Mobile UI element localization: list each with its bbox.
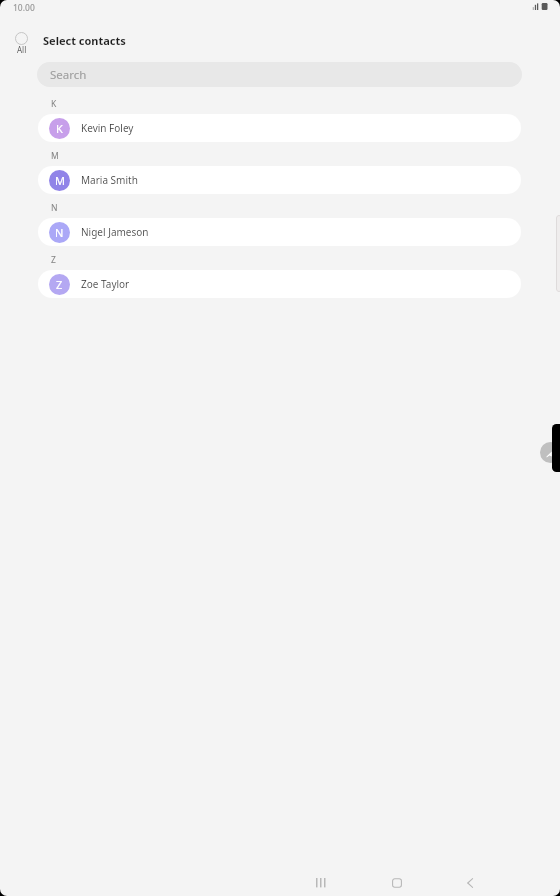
staticText: Z (56, 277, 63, 292)
staticText: Kevin Foley (81, 121, 134, 135)
button[interactable]: M (38, 166, 521, 194)
button[interactable]: Home (359, 867, 434, 896)
staticText: Maria Smith (81, 173, 138, 187)
staticText: Nigel Jameson (81, 225, 149, 239)
staticText: Zoe Taylor (81, 277, 130, 291)
button[interactable]: Search contacts (37, 62, 522, 87)
staticText: 10.00 (13, 2, 35, 14)
staticText: N (55, 225, 64, 240)
staticText: K (56, 121, 63, 136)
staticText: N (51, 202, 58, 214)
staticText: All (17, 44, 27, 55)
button[interactable]: Select all (12, 32, 31, 56)
button[interactable]: Z (38, 270, 521, 298)
button[interactable]: Edge panel (552, 424, 560, 472)
staticText: M (55, 173, 65, 188)
staticText: Search (50, 67, 87, 83)
button[interactable]: Recents (284, 867, 359, 896)
staticText: M (51, 150, 59, 162)
button[interactable]: K (38, 114, 521, 142)
staticText: Z (51, 254, 56, 266)
staticText: Select contacts (43, 33, 126, 48)
button[interactable]: Back (434, 867, 509, 896)
button[interactable]: N (38, 218, 521, 246)
staticText: K (51, 98, 57, 110)
